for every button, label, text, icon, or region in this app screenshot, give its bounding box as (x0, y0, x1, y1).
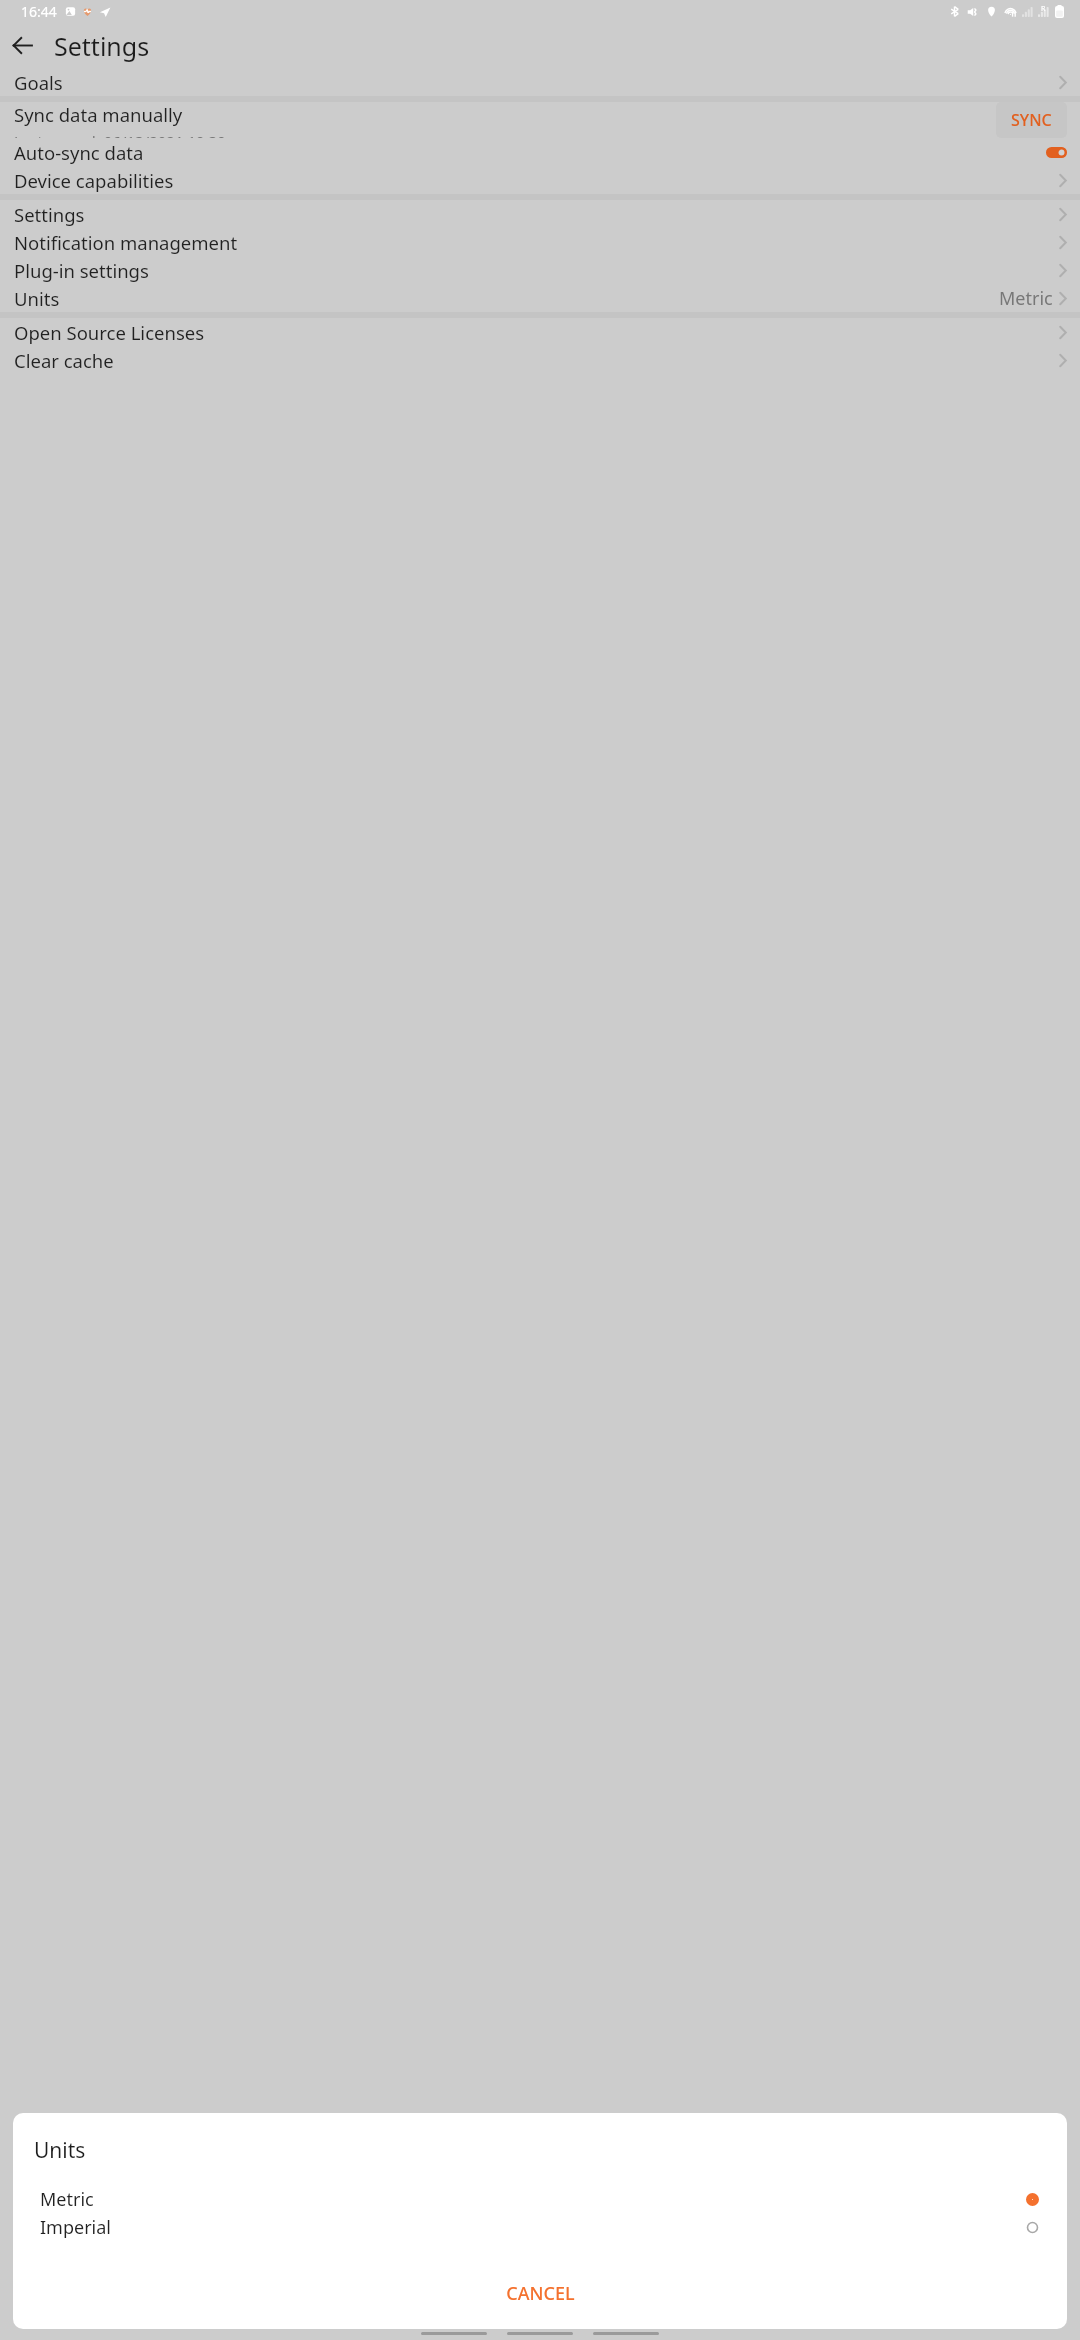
button[interactable]: Metric (13, 2185, 1067, 2213)
staticText: Notification management (14, 230, 238, 255)
button[interactable]: Back (593, 2332, 659, 2335)
button[interactable]: SYNC (996, 102, 1067, 138)
button[interactable]: CANCEL (13, 2271, 1067, 2315)
button[interactable]: Goals (0, 68, 1080, 96)
staticText: Imperial (40, 2215, 111, 2240)
staticText: Units (34, 2136, 86, 2165)
button[interactable]: Clear cache (0, 346, 1080, 374)
button[interactable]: Notification management (0, 228, 1080, 256)
button[interactable]: Settings (0, 200, 1080, 228)
staticText: Auto-sync data (14, 140, 144, 165)
staticText: SYNC (1011, 109, 1052, 131)
staticText: Clear cache (14, 348, 114, 373)
button[interactable]: Recents (421, 2332, 487, 2335)
staticText: Device capabilities (14, 168, 174, 193)
staticText: Sync data manually (14, 102, 183, 127)
button[interactable]: Imperial (13, 2213, 1067, 2241)
button[interactable]: Plug-in settings (0, 256, 1080, 284)
staticText: Metric (40, 2187, 94, 2212)
staticText: Last synced: 06/13/2021 19:39 (14, 131, 226, 138)
staticText: Settings (14, 202, 85, 227)
staticText: Goals (14, 70, 63, 95)
staticText: Settings (54, 29, 150, 63)
staticText: R (1041, 4, 1046, 14)
staticText: Plug-in settings (14, 258, 149, 283)
staticText: 16:44 (21, 2, 57, 21)
staticText: CANCEL (506, 2281, 575, 2306)
staticText: Metric (999, 286, 1053, 311)
button[interactable]: Units (0, 284, 1080, 312)
button[interactable]: Back (0, 23, 45, 68)
button[interactable]: Home (507, 2332, 573, 2335)
button[interactable]: Device capabilities (0, 166, 1080, 194)
button[interactable]: Open Source Licenses (0, 318, 1080, 346)
button[interactable]: Sync data manually (0, 102, 1080, 138)
staticText: Units (14, 286, 60, 311)
staticText: Open Source Licenses (14, 320, 205, 345)
button[interactable]: Auto-sync data (0, 138, 1080, 166)
